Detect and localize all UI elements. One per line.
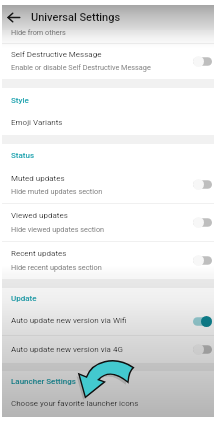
- button[interactable]: Choose your favorite launcher icons: [2, 391, 214, 417]
- button[interactable]: Status: [2, 144, 214, 166]
- staticText: Emoji Variants: [11, 118, 63, 127]
- staticText: Launcher Settings: [11, 377, 76, 386]
- button[interactable]: Self Destructive Message: [2, 43, 214, 79]
- staticText: Update: [11, 294, 37, 303]
- staticText: Style: [11, 96, 29, 105]
- staticText: Choose your favorite launcher icons: [11, 399, 139, 408]
- staticText: Self Destructive Message: [11, 50, 102, 59]
- staticText: Hide from others: [11, 28, 66, 37]
- staticText: Enable or disable Self Destructive Messa…: [11, 63, 151, 72]
- button[interactable]: Switch off: [193, 179, 212, 190]
- button[interactable]: Viewed updates: [2, 204, 214, 242]
- staticText: Hide muted updates section: [11, 187, 103, 196]
- staticText: Auto update new version via 4G: [11, 345, 123, 354]
- staticText: Viewed updates: [11, 211, 68, 220]
- button[interactable]: Switch off: [193, 217, 212, 228]
- staticText: Hide viewed updates section: [11, 225, 105, 234]
- button[interactable]: Muted updates: [2, 166, 214, 204]
- staticText: Hide recent updates section: [11, 263, 102, 272]
- button[interactable]: Switch off: [193, 344, 212, 355]
- button[interactable]: Auto update new version via Wifi: [2, 307, 214, 335]
- button[interactable]: Emoji Variants: [2, 111, 214, 135]
- button[interactable]: Auto update new version via 4G: [2, 336, 214, 364]
- button[interactable]: Switch on: [193, 316, 212, 327]
- button[interactable]: Launcher Settings: [2, 371, 214, 392]
- button[interactable]: Recent updates: [2, 242, 214, 279]
- staticText: Muted updates: [11, 174, 65, 183]
- button[interactable]: Update: [2, 288, 214, 308]
- staticText: Universal Settings: [31, 11, 121, 24]
- button[interactable]: Style: [2, 88, 214, 112]
- staticText: Status: [11, 151, 35, 160]
- button[interactable]: Back: [2, 5, 25, 30]
- button[interactable]: Switch off: [193, 255, 212, 266]
- staticText: Recent updates: [11, 249, 67, 258]
- button[interactable]: Switch off: [193, 56, 212, 67]
- staticText: Auto update new version via Wifi: [11, 316, 127, 325]
